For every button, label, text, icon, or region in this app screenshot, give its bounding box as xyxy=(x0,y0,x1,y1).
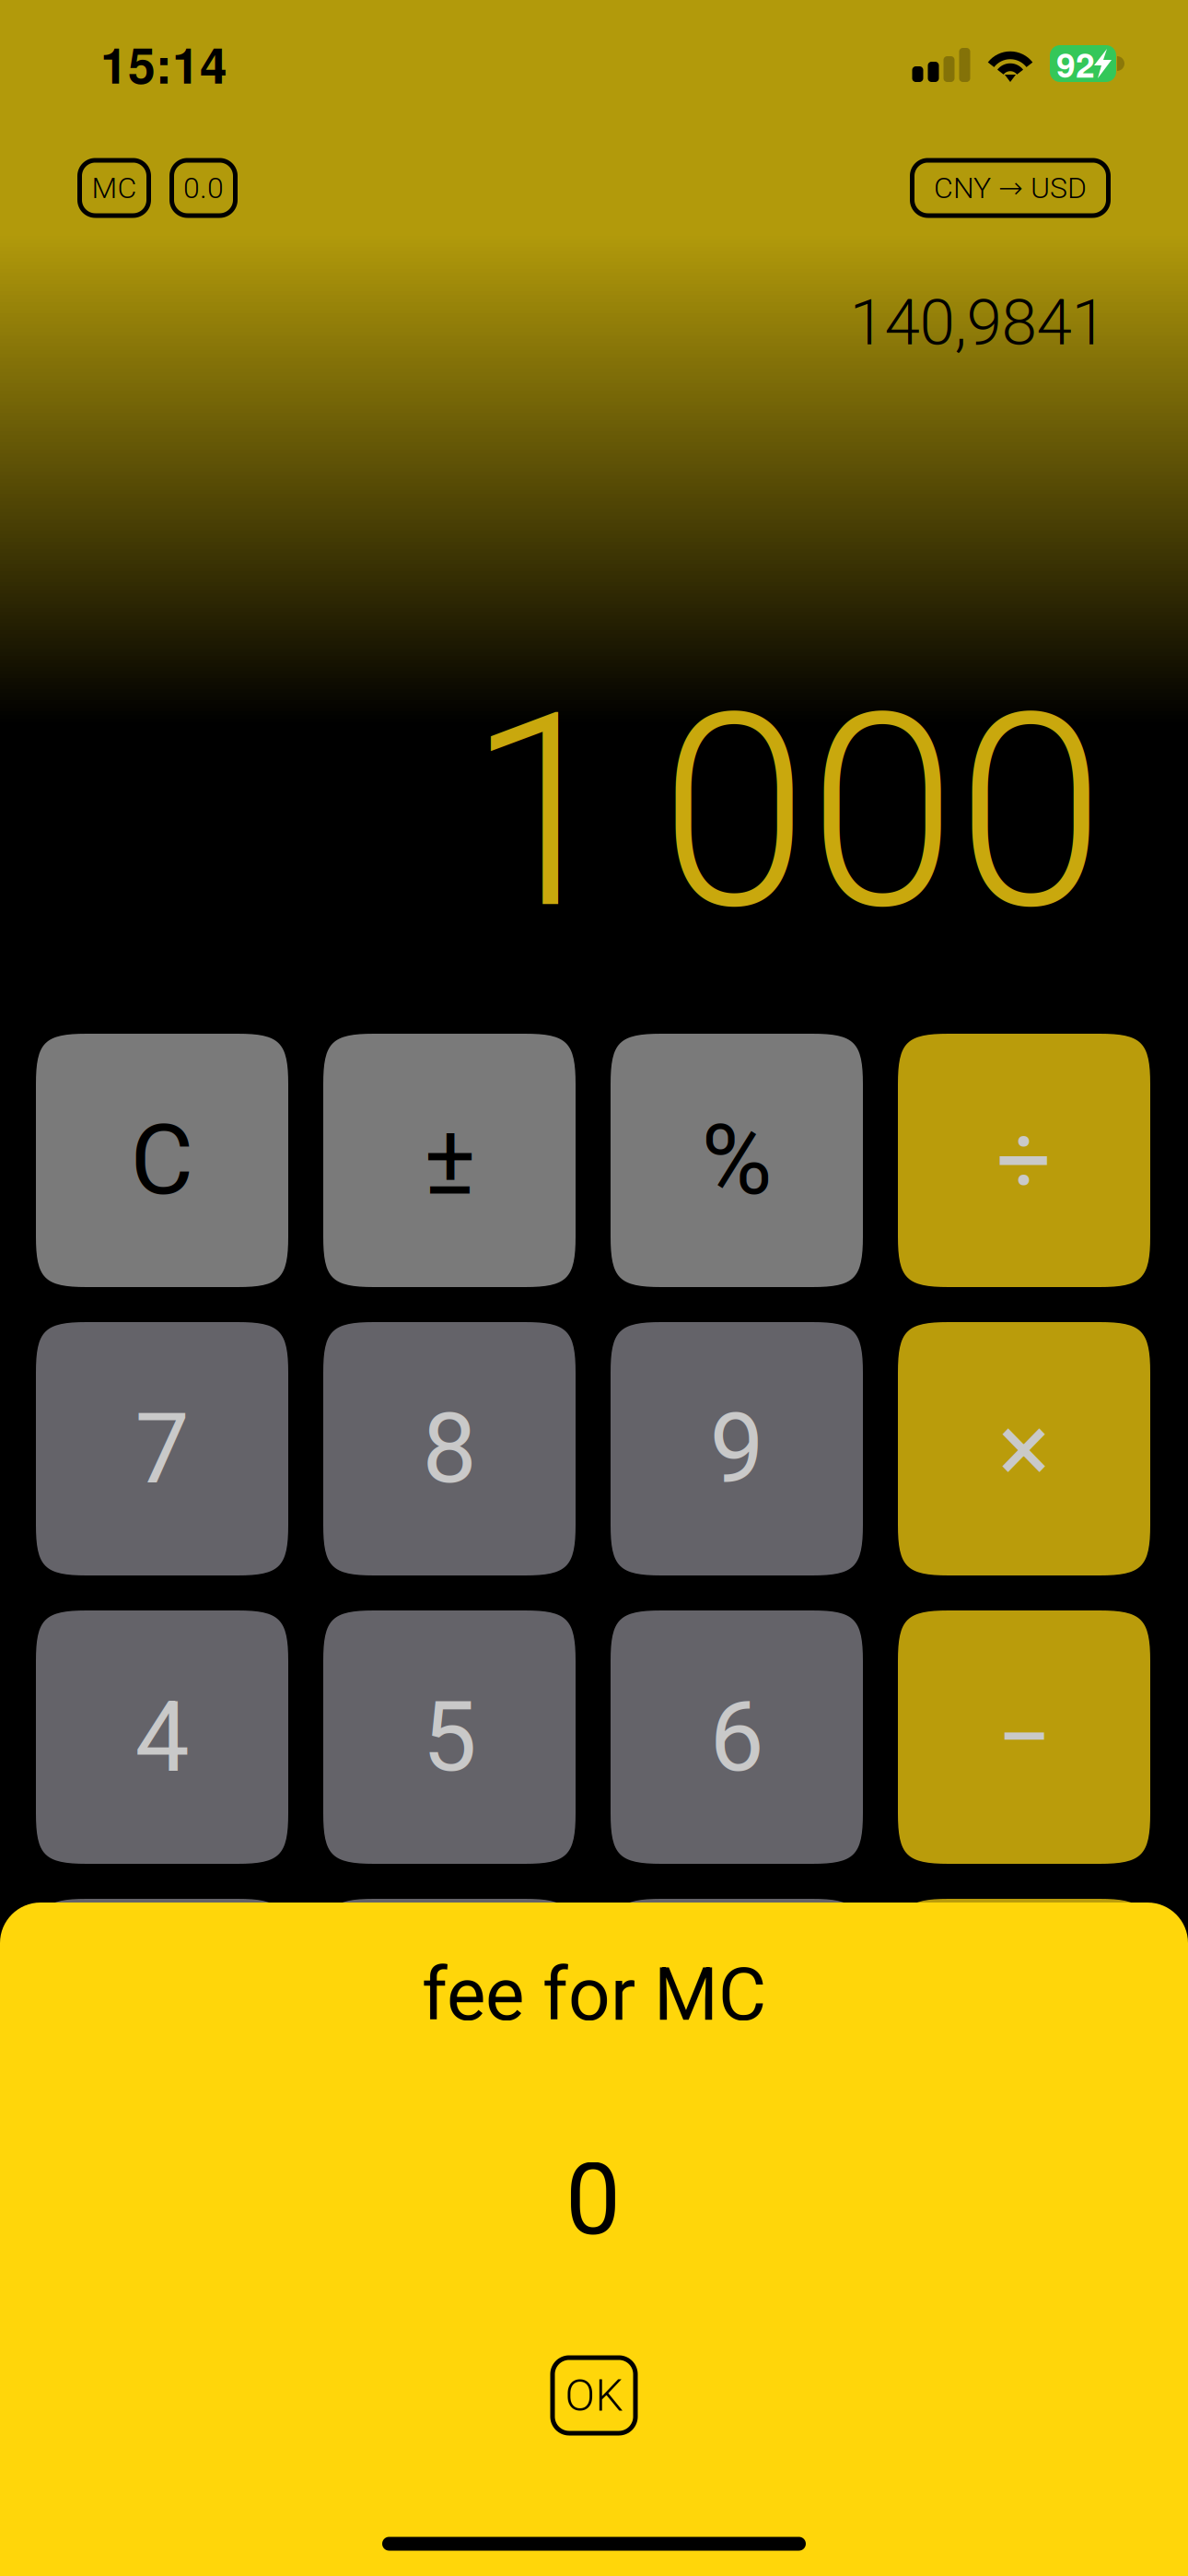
staticText: 7 xyxy=(135,1392,189,1506)
staticText: 2 xyxy=(422,1969,477,2082)
staticText: MC xyxy=(92,171,137,205)
button[interactable]: CNY → USD xyxy=(912,160,1108,216)
button[interactable]: Clear xyxy=(36,1034,288,1287)
button[interactable]: 5 xyxy=(323,1610,576,1864)
button[interactable]: 4 xyxy=(36,1610,288,1864)
button[interactable]: 2 xyxy=(323,1899,576,2152)
button[interactable]: 8 xyxy=(323,1322,576,1575)
staticText: 0 xyxy=(565,2143,621,2258)
staticText: 3 xyxy=(710,1969,764,2082)
staticText: 0.0 xyxy=(183,171,224,205)
staticText: − xyxy=(996,1680,1052,1794)
button[interactable]: Minus xyxy=(898,1610,1150,1864)
staticText: 15:14 xyxy=(100,28,227,99)
staticText: % xyxy=(701,1104,772,1217)
staticText: 92 xyxy=(1056,39,1095,88)
staticText: × xyxy=(998,1392,1050,1506)
staticText: 4 xyxy=(135,1680,189,1794)
staticText: 8 xyxy=(422,1392,477,1506)
staticText: 5 xyxy=(422,1680,477,1794)
button[interactable]: OK xyxy=(553,2358,635,2433)
staticText: fee for MC xyxy=(422,1951,766,2038)
staticText: OK xyxy=(565,2370,623,2421)
staticText: ÷ xyxy=(996,1104,1052,1217)
staticText: C xyxy=(130,1104,194,1217)
button[interactable]: 6 xyxy=(611,1610,863,1864)
staticText: 140,9841 xyxy=(850,285,1106,360)
button[interactable]: 7 xyxy=(36,1322,288,1575)
staticText: CNY → USD xyxy=(934,171,1087,205)
staticText: 6 xyxy=(710,1680,764,1794)
button[interactable]: Divide xyxy=(898,1034,1150,1287)
button[interactable]: MC xyxy=(80,160,149,216)
button[interactable]: Plus minus xyxy=(323,1034,576,1287)
button[interactable]: 0.0 xyxy=(172,160,235,216)
button[interactable]: 9 xyxy=(611,1322,863,1575)
staticText: ± xyxy=(424,1104,475,1217)
button[interactable]: Multiply xyxy=(898,1322,1150,1575)
button[interactable]: Plus xyxy=(898,1899,1150,2152)
staticText: 000 xyxy=(660,656,1105,970)
button[interactable]: 1 xyxy=(36,1899,288,2152)
staticText: 9 xyxy=(710,1392,764,1506)
staticText: 1 xyxy=(467,656,616,970)
button[interactable]: Percent xyxy=(611,1034,863,1287)
button[interactable]: 3 xyxy=(611,1899,863,2152)
